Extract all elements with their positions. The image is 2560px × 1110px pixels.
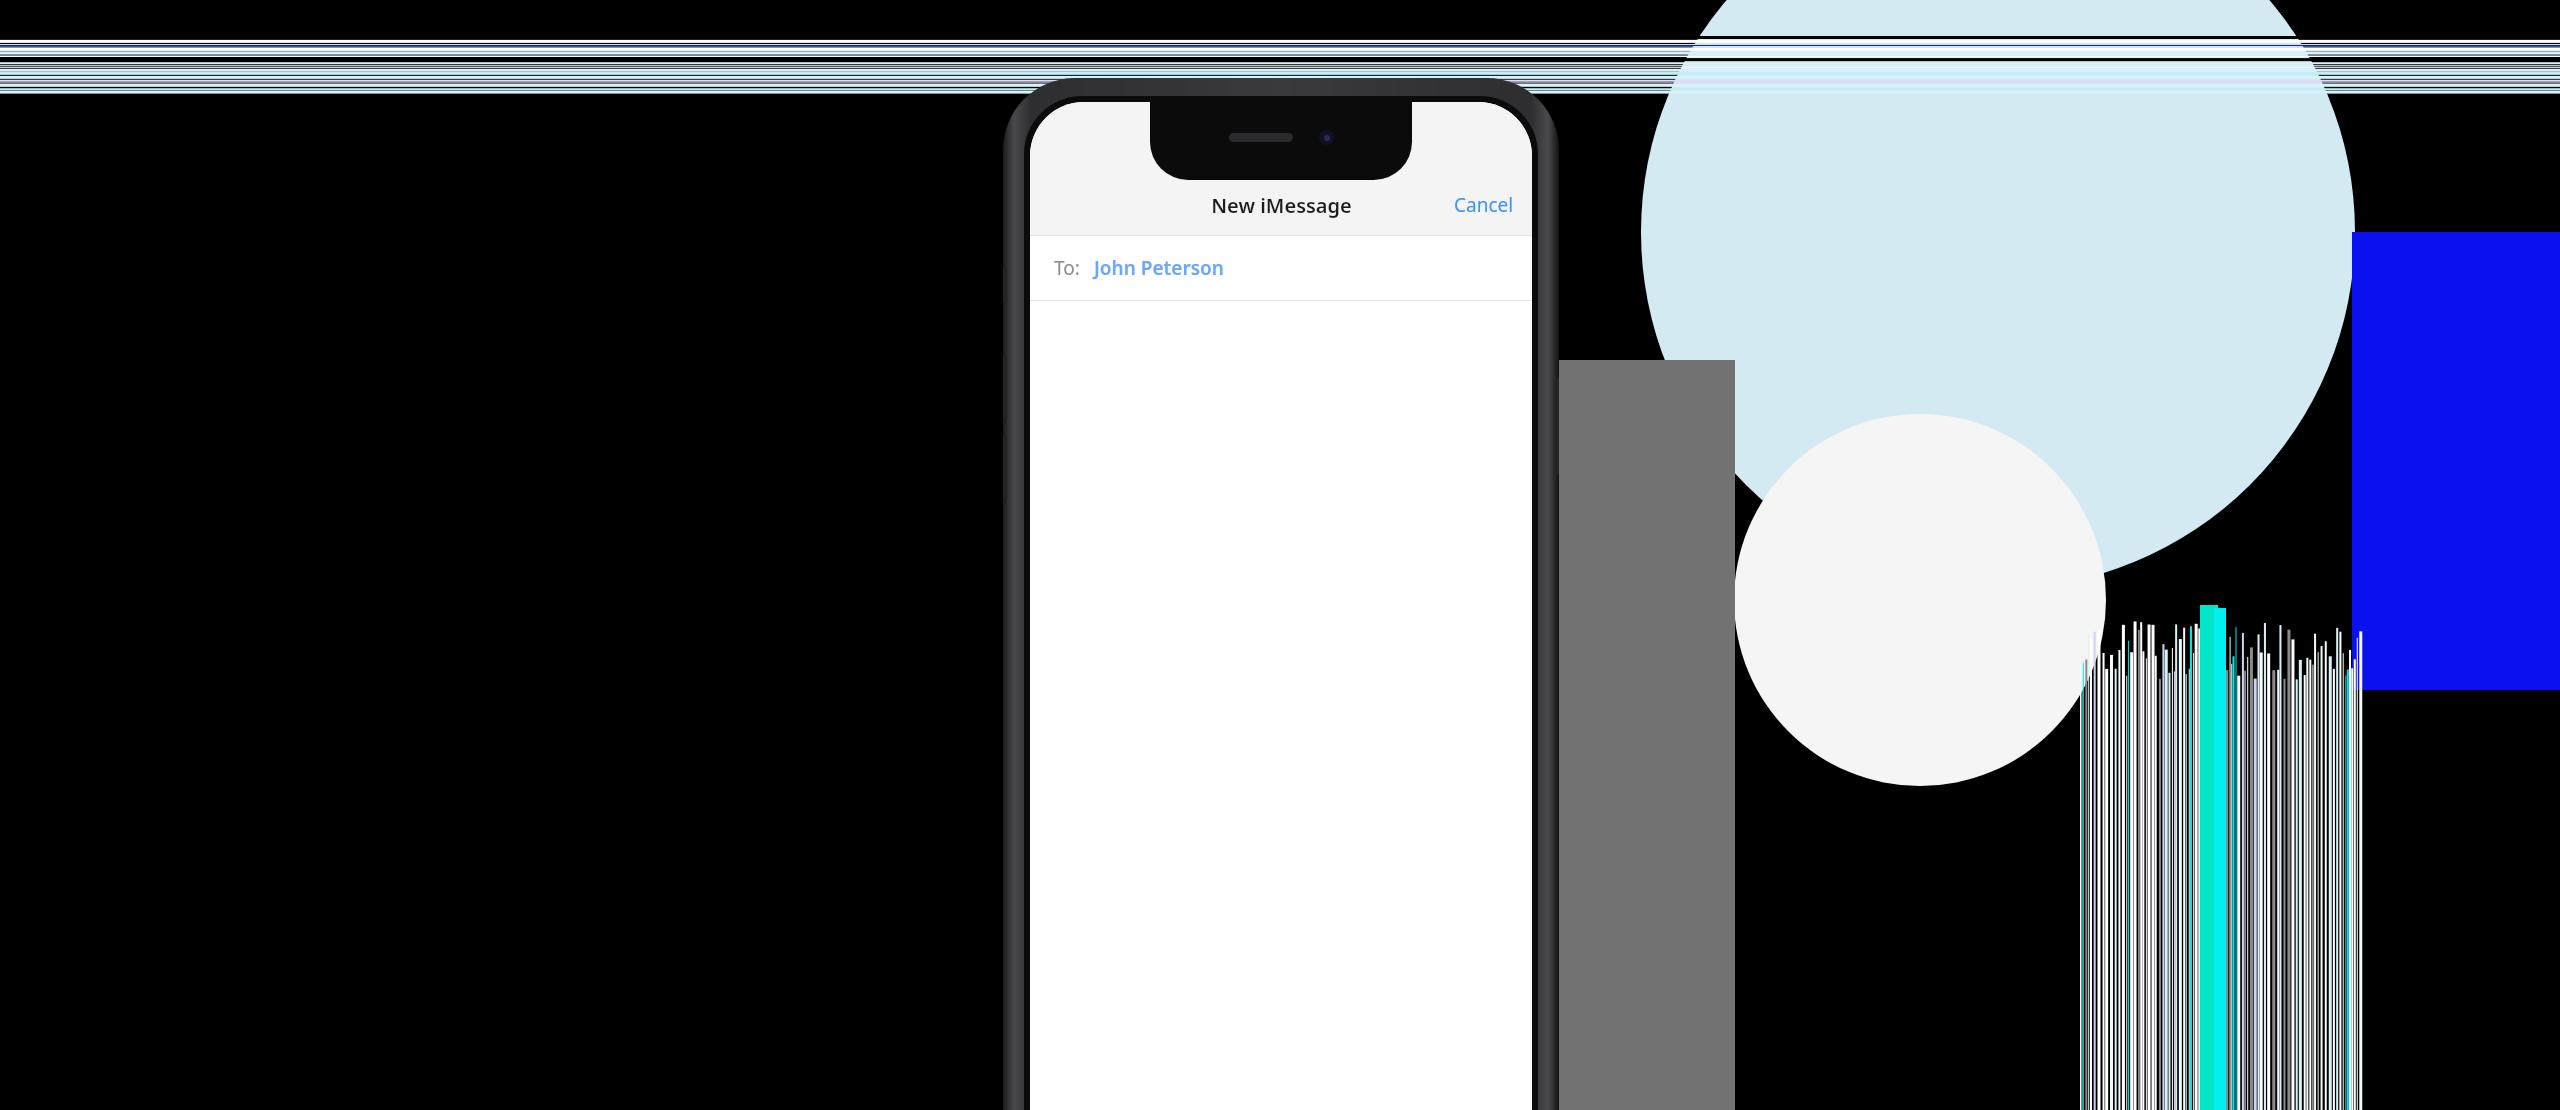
staticText: New iMessage [1211, 192, 1352, 219]
button[interactable]: Cancel [1436, 186, 1532, 224]
staticText: Cancel [1454, 192, 1514, 218]
button[interactable]: To: [1030, 236, 1532, 300]
staticText: John Peterson [1094, 255, 1224, 281]
staticText: To: [1054, 255, 1080, 281]
